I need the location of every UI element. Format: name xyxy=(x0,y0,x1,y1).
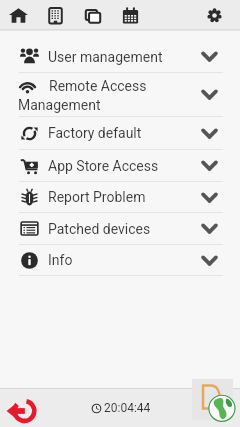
button[interactable]: Calendar xyxy=(117,2,144,29)
button[interactable]: Copies xyxy=(79,2,106,29)
staticText: App Store Access xyxy=(48,158,159,174)
staticText: Patched devices xyxy=(48,221,151,237)
button[interactable]: Info xyxy=(0,245,240,275)
button[interactable]: Home xyxy=(5,2,32,29)
staticText: Info xyxy=(48,252,73,268)
button[interactable]: Factory default xyxy=(0,117,240,149)
button[interactable]: Patched devices xyxy=(0,213,240,244)
staticText: Management xyxy=(18,97,101,113)
button[interactable]: Settings xyxy=(201,2,228,29)
staticText: User management xyxy=(48,49,163,65)
button[interactable]: Vendor logo xyxy=(192,379,233,420)
staticText: 20:04:44 xyxy=(104,401,151,415)
staticText: Report Problem xyxy=(48,189,146,205)
button[interactable]: Report Problem xyxy=(0,182,240,212)
button[interactable]: App Store Access xyxy=(0,150,240,181)
staticText: Factory default xyxy=(48,125,142,141)
button[interactable]: User management xyxy=(0,41,240,72)
button[interactable]: Remote Access xyxy=(0,73,240,116)
staticText: Remote Access xyxy=(49,78,147,94)
button[interactable]: Back xyxy=(5,397,35,425)
button[interactable]: Buildings xyxy=(42,2,69,29)
